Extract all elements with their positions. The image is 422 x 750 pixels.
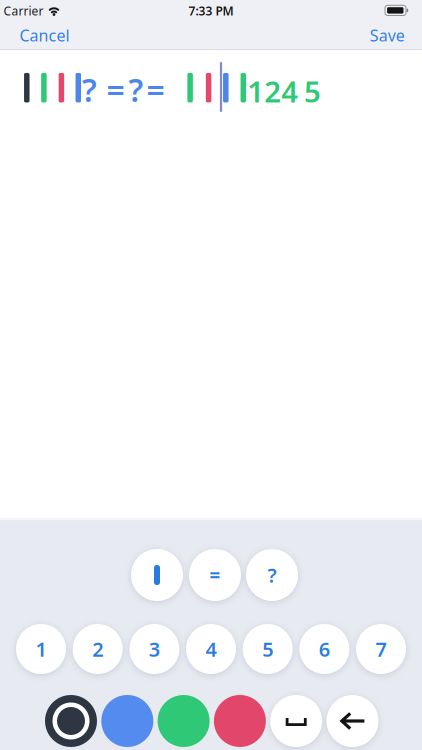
button[interactable]: ? [246,549,298,601]
button[interactable]: 5 [243,624,293,674]
staticText: 7 [375,636,386,662]
button[interactable]: Save [370,25,405,46]
staticText: 3 [149,636,160,662]
button[interactable]: Blue color [101,695,153,747]
staticText: = [107,68,125,111]
staticText: 1 [35,636,46,662]
staticText: 5 [262,636,273,662]
button[interactable]: 1 [16,624,66,674]
staticText: ? [82,68,97,111]
staticText: Cancel [19,25,69,46]
staticText: = [146,68,164,111]
button[interactable]: 4 [186,624,236,674]
button[interactable]: 6 [299,624,349,674]
staticText: 124 [247,72,298,111]
button[interactable]: 3 [129,624,179,674]
staticText: 6 [319,636,330,662]
staticText: 4 [205,636,216,662]
staticText: 5 [304,72,321,111]
staticText: Carrier [3,3,43,19]
staticText: = [209,563,220,587]
button[interactable]: = [189,549,241,601]
button[interactable]: 2 [73,624,123,674]
button[interactable]: Cancel [19,25,69,46]
staticText: ? [267,562,276,588]
button[interactable]: Red color [214,695,266,747]
staticText: 2 [92,636,103,662]
button[interactable]: Green color [158,695,210,747]
button[interactable]: Black color [45,695,97,747]
staticText: Save [370,25,405,46]
button[interactable]: Delete [326,695,378,747]
staticText: ? [128,68,143,111]
button[interactable]: 7 [356,624,406,674]
button[interactable]: Space [270,695,322,747]
staticText: 7:33 PM [188,3,233,19]
button[interactable]: I [131,549,183,601]
